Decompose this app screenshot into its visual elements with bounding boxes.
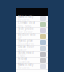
- staticText: Markets rally: [18, 15, 33, 18]
- button[interactable]: Stocks mixed: [16, 52, 48, 58]
- staticText: BBC News: [18, 24, 31, 28]
- staticText: Election vote: [18, 33, 36, 36]
- button[interactable]: Election vote: [16, 34, 48, 40]
- button[interactable]: Ocean floor: [16, 46, 48, 52]
- staticText: Climate deal: [18, 21, 35, 24]
- button[interactable]: Festival: [16, 58, 48, 64]
- staticText: CNBC: [18, 54, 26, 58]
- button[interactable]: Climate deal: [16, 22, 48, 28]
- staticText: Transit plan: [18, 39, 33, 42]
- staticText: Reuters: [18, 18, 29, 22]
- staticText: AP: [18, 36, 22, 40]
- staticText: Guardian: [18, 60, 30, 64]
- staticText: Festival: [18, 57, 27, 60]
- button[interactable]: Markets rally: [16, 64, 48, 70]
- staticText: Reuters: [18, 66, 29, 70]
- staticText: Ocean floor: [18, 45, 34, 48]
- staticText: Nature: [18, 48, 27, 52]
- staticText: Bloomberg: [18, 42, 34, 46]
- staticText: Tech probe: [18, 27, 34, 30]
- button[interactable]: Markets rally: [16, 16, 48, 22]
- staticText: The Verge: [18, 30, 33, 34]
- staticText: Markets rally: [18, 63, 33, 66]
- staticText: Stocks mixed: [18, 51, 34, 54]
- button[interactable]: Transit plan: [16, 40, 48, 46]
- button[interactable]: Tech probe: [16, 28, 48, 34]
